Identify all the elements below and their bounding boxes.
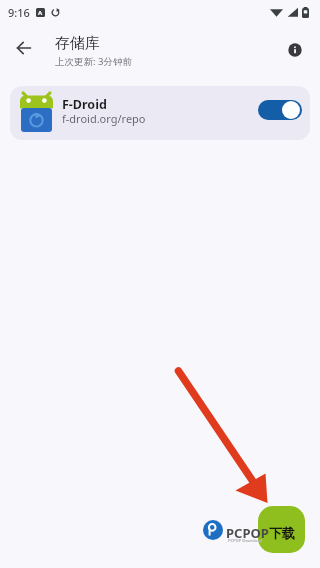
button[interactable]: Repository enabled	[258, 100, 302, 120]
staticText: 上次更新: 3分钟前	[55, 55, 132, 68]
staticText: PCPOP	[226, 524, 269, 542]
button[interactable]: Back	[4, 28, 44, 68]
staticText: 9:16	[8, 5, 30, 20]
staticText: 存储库	[55, 34, 100, 53]
button[interactable]: Add repository	[258, 506, 305, 553]
button[interactable]: Repository info	[276, 31, 313, 68]
staticText: F-Droid	[62, 96, 107, 113]
staticText: f-droid.org/repo	[62, 111, 146, 126]
staticText: PCPOP Download	[228, 538, 263, 543]
staticText: 下载	[269, 525, 295, 541]
button[interactable]: F-Droid	[10, 86, 310, 140]
staticText: A	[38, 9, 43, 17]
